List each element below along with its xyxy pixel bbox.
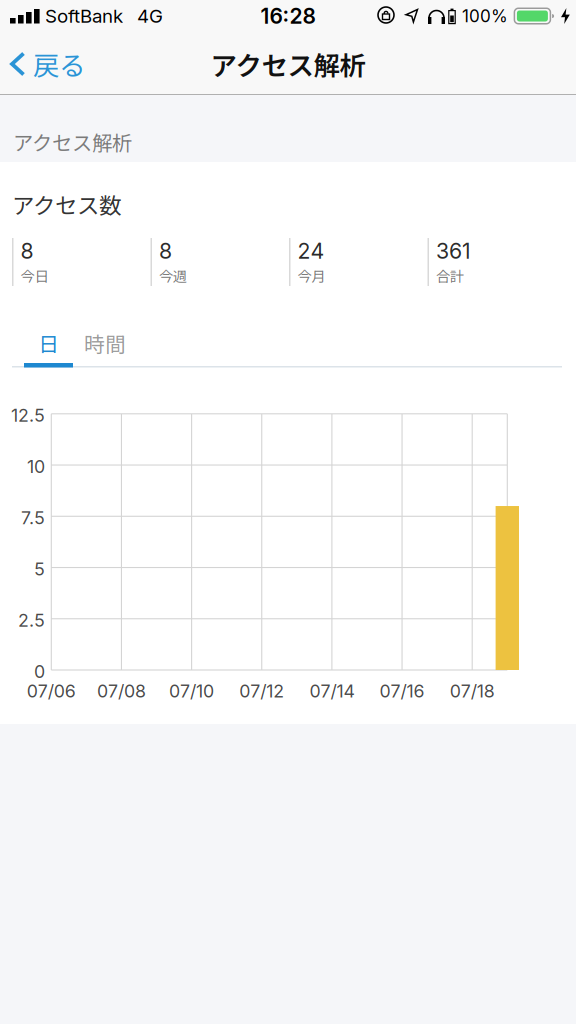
staticText: SoftBank — [45, 5, 123, 27]
staticText: 24 — [297, 238, 324, 264]
staticText: 07/16 — [380, 680, 425, 702]
staticText: 07/14 — [309, 680, 354, 702]
staticText: 今日 — [20, 265, 48, 286]
staticText: 8 — [20, 238, 33, 264]
staticText: 2.5 — [18, 609, 45, 631]
staticText: 今月 — [297, 265, 325, 286]
staticText: 時間 — [84, 328, 126, 358]
staticText: 16:28 — [260, 3, 315, 29]
staticText: 10 — [27, 456, 45, 477]
staticText: アクセス解析 — [13, 127, 132, 156]
staticText: 今週 — [159, 265, 187, 286]
staticText: 100% — [462, 6, 508, 26]
staticText: 合計 — [436, 265, 464, 286]
staticText: 5 — [34, 558, 45, 580]
button[interactable]: 日 — [24, 329, 74, 357]
staticText: 07/18 — [450, 680, 495, 702]
staticText: 7.5 — [21, 507, 45, 529]
button[interactable]: 戻る — [0, 45, 85, 83]
staticText: 07/08 — [97, 680, 146, 702]
staticText: 361 — [436, 238, 471, 264]
staticText: 4G — [137, 5, 163, 27]
staticText: 07/10 — [169, 680, 214, 702]
staticText: 07/12 — [239, 680, 284, 702]
staticText: 07/06 — [27, 680, 76, 702]
staticText: 戻る — [33, 45, 85, 83]
staticText: 12.5 — [11, 405, 45, 426]
button[interactable]: 時間 — [79, 329, 131, 357]
staticText: 8 — [159, 238, 172, 264]
staticText: アクセス解析 — [210, 45, 365, 83]
staticText: 0 — [34, 661, 45, 682]
staticText: アクセス数 — [12, 188, 121, 220]
staticText: 日 — [38, 328, 59, 358]
